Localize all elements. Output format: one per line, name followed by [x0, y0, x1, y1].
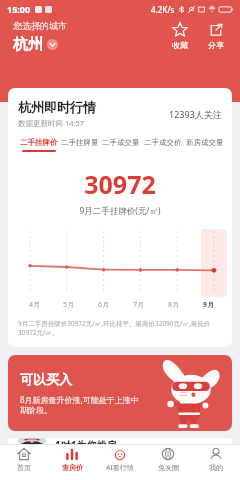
- staticText: 二手成交量: [102, 138, 140, 147]
- staticText: 5月: [63, 300, 75, 310]
- staticText: AI看行情: [106, 463, 134, 473]
- button[interactable]: AI看行情: [96, 444, 144, 480]
- button[interactable]: 二手挂牌量: [59, 137, 100, 151]
- other: 首页: [17, 447, 31, 461]
- staticText: 12393人关注: [169, 108, 222, 120]
- staticText: 二手挂牌量: [61, 138, 99, 147]
- staticText: 8月新房量升价涨,可能处于上涨中期阶段。: [20, 394, 146, 415]
- staticText: 分享: [208, 40, 224, 50]
- other: 免友圈: [161, 447, 175, 461]
- button[interactable]: 二手成交量: [100, 137, 142, 151]
- staticText: 首页: [17, 463, 31, 472]
- staticText: 我的: [209, 463, 223, 472]
- button[interactable]: 1对1为您挑房: [8, 438, 232, 444]
- staticText: 4月: [29, 300, 41, 310]
- staticText: 免友圈: [158, 463, 179, 472]
- staticText: 二手挂牌价: [20, 138, 58, 147]
- button[interactable]: 新房成交量: [184, 137, 226, 151]
- other: 我的: [209, 447, 223, 461]
- button[interactable]: 可以买入: [8, 355, 232, 431]
- button[interactable]: 二手成交价: [142, 137, 184, 151]
- button[interactable]: 查房价: [48, 444, 96, 480]
- button[interactable]: 分享: [202, 20, 230, 52]
- staticText: 数据更新时间 14:57: [18, 118, 85, 128]
- staticText: 新房成交量: [186, 138, 224, 147]
- staticText: 二手成交价: [144, 138, 182, 147]
- button[interactable]: 免友圈: [144, 444, 192, 480]
- other: 查房价: [65, 447, 79, 461]
- staticText: 9月二手房挂牌价30972元/㎡,环比持平。最高价32090元/㎡,最低价309…: [18, 319, 222, 337]
- staticText: 9月: [203, 300, 215, 310]
- staticText: 可以买入: [20, 371, 72, 387]
- staticText: 7月: [133, 300, 145, 310]
- staticText: 1对1为您挑房: [55, 438, 117, 444]
- other: AI看行情: [113, 447, 127, 461]
- staticText: 杭州即时行情: [18, 99, 96, 115]
- button[interactable]: 收藏: [166, 20, 194, 52]
- staticText: 9月二手挂牌价(元/㎡): [8, 205, 232, 217]
- staticText: 6月: [98, 300, 110, 310]
- staticText: 15:00: [7, 3, 31, 15]
- staticText: 8月: [168, 300, 180, 310]
- staticText: 4.2K/s: [151, 4, 175, 15]
- staticText: 杭州: [13, 35, 43, 54]
- button[interactable]: 首页: [0, 444, 48, 480]
- button[interactable]: 二手挂牌价: [18, 137, 59, 153]
- staticText: 收藏: [172, 40, 188, 50]
- staticText: 查房价: [62, 463, 83, 472]
- staticText: 您选择的城市: [13, 20, 67, 31]
- button[interactable]: 我的: [192, 444, 240, 480]
- staticText: 30972: [8, 167, 232, 201]
